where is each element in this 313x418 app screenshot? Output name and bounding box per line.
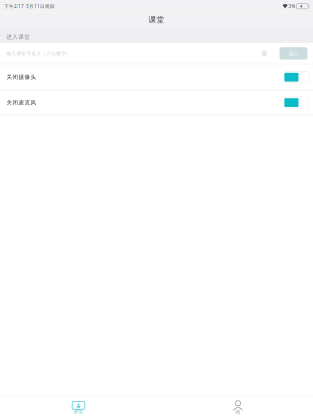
button[interactable]: 课堂 — [58, 396, 98, 418]
staticText: 关闭摄像头 — [7, 74, 37, 81]
staticText: 下午2:17 3月11日周四 — [4, 3, 55, 9]
staticText: 输入课堂号进入（六位数字） — [7, 50, 72, 56]
staticText: 我 — [235, 409, 240, 415]
button[interactable]: 进入 — [279, 47, 307, 60]
button[interactable]: 我 — [218, 396, 258, 418]
staticText: 3% — [288, 3, 295, 9]
staticText: 进入课堂 — [6, 33, 30, 40]
staticText: 课堂 — [73, 409, 83, 415]
button[interactable]: 关闭摄像头 — [0, 64, 313, 90]
button[interactable]: 关闭麦克风 — [0, 91, 313, 115]
staticText: 进入 — [288, 50, 298, 57]
button[interactable]: 清除 — [258, 47, 270, 60]
staticText: 关闭麦克风 — [7, 99, 37, 106]
staticText: 课堂 — [148, 15, 164, 24]
